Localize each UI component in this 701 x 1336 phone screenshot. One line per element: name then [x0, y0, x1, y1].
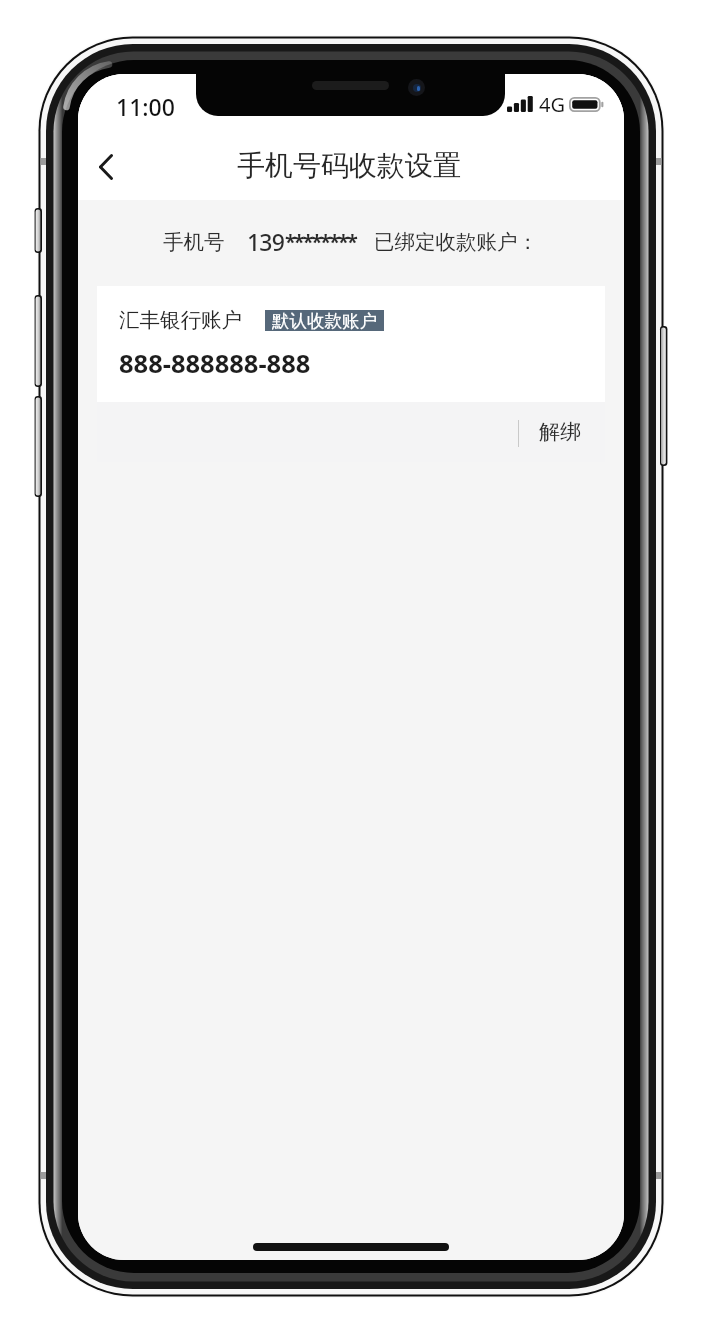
staticText: 手机号: [163, 229, 225, 255]
staticText: 默认收款账户: [272, 310, 377, 331]
staticText: 汇丰银行账户: [119, 307, 242, 333]
staticText: 手机号码收款设置: [237, 148, 461, 183]
button[interactable]: 解绑: [537, 402, 624, 462]
staticText: 4G: [539, 91, 565, 118]
staticText: 已绑定收款账户：: [374, 229, 538, 255]
staticText: 139: [247, 226, 285, 257]
staticText: 11:00: [116, 91, 175, 122]
staticText: 解绑: [539, 419, 581, 445]
staticText: 888-888888-888: [119, 346, 311, 381]
staticText: ********: [285, 228, 356, 255]
button[interactable]: Back: [78, 139, 133, 195]
